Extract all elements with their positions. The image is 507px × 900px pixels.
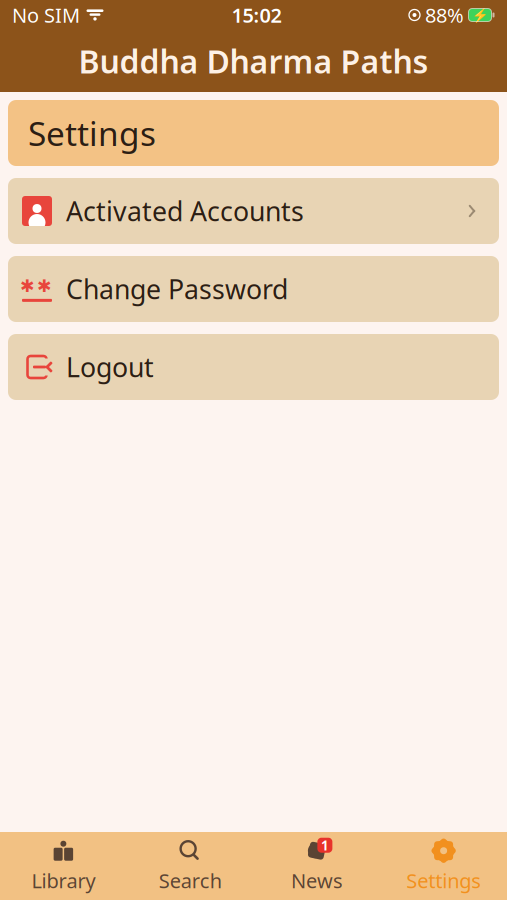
staticText: ⚡: [471, 7, 488, 23]
button[interactable]: Settings: [380, 832, 507, 900]
staticText: ✱: [20, 276, 35, 296]
button[interactable]: Library: [0, 832, 127, 900]
staticText: Buddha Dharma Paths: [78, 40, 428, 82]
staticText: Change Password: [66, 271, 288, 307]
staticText: No SIM: [12, 2, 80, 28]
staticText: ✱: [37, 276, 52, 296]
staticText: Settings: [28, 111, 156, 155]
staticText: Settings: [406, 867, 481, 894]
button[interactable]: Activated Accounts: [8, 178, 499, 244]
staticText: 15:02: [231, 2, 281, 28]
staticText: Library: [31, 867, 95, 894]
button[interactable]: ✱: [8, 256, 499, 322]
button[interactable]: Logout: [8, 334, 499, 400]
staticText: Search: [159, 867, 222, 894]
button[interactable]: Search: [127, 832, 254, 900]
staticText: Activated Accounts: [66, 193, 304, 229]
staticText: News: [291, 867, 343, 894]
staticText: 88%: [425, 2, 464, 28]
button[interactable]: 1: [253, 832, 380, 900]
staticText: 1: [321, 836, 329, 854]
staticText: Logout: [66, 349, 154, 385]
